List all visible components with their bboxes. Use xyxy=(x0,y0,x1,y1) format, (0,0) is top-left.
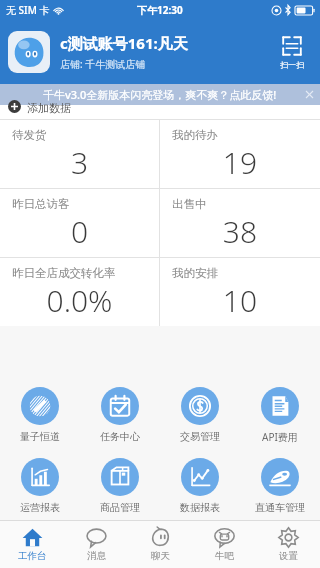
staticText: 3 xyxy=(12,142,147,182)
staticText: 19 xyxy=(172,142,308,182)
staticText: 扫一扫 xyxy=(280,60,304,70)
button[interactable]: 量子恒道 xyxy=(0,383,80,447)
button[interactable]: 交易管理 xyxy=(160,383,240,447)
staticText: 添加数据 xyxy=(27,101,71,115)
button[interactable]: 出售中 xyxy=(160,189,320,257)
button[interactable]: 添加数据 xyxy=(0,105,320,119)
staticText: 消息 xyxy=(87,550,106,562)
staticText: 店铺: 千牛测试店铺 xyxy=(60,57,146,71)
staticText: 数据报表 xyxy=(180,501,220,514)
button[interactable]: 数据报表 xyxy=(160,454,240,518)
staticText: 我的安排 xyxy=(172,266,218,280)
button[interactable]: 扫一扫 xyxy=(272,20,312,84)
button[interactable]: API费用 xyxy=(240,383,320,448)
staticText: 我的待办 xyxy=(172,128,218,142)
button[interactable]: 我的安排 xyxy=(160,258,320,326)
staticText: 0 xyxy=(12,211,147,251)
button[interactable]: 任务中心 xyxy=(80,383,160,447)
staticText: 设置 xyxy=(279,550,298,562)
button[interactable]: 关闭 xyxy=(298,84,320,105)
button[interactable]: 牛吧 xyxy=(192,521,256,568)
staticText: 任务中心 xyxy=(100,430,140,443)
button[interactable]: 运营报表 xyxy=(0,454,80,518)
button[interactable]: 直通车管理 xyxy=(240,454,320,518)
staticText: 0.0% xyxy=(12,280,147,320)
staticText: 无 SIM 卡 xyxy=(6,3,50,17)
staticText: 出售中 xyxy=(172,197,207,211)
button[interactable]: 昨日总访客 xyxy=(0,189,159,257)
staticText: 昨日全店成交转化率 xyxy=(12,266,116,280)
button[interactable]: 我的待办 xyxy=(160,120,320,188)
button[interactable]: 工作台 xyxy=(0,521,64,568)
staticText: 10 xyxy=(172,280,308,320)
button[interactable]: 商品管理 xyxy=(80,454,160,518)
button[interactable]: 千牛v3.0全新版本闪亮登场，爽不爽？点此反馈! xyxy=(0,84,320,105)
button[interactable]: 待发货 xyxy=(0,120,159,188)
staticText: 交易管理 xyxy=(180,430,220,443)
staticText: 待发货 xyxy=(12,128,47,142)
button[interactable]: 设置 xyxy=(256,521,320,568)
button[interactable] xyxy=(8,31,50,73)
button[interactable]: 消息 xyxy=(64,521,128,568)
staticText: API费用 xyxy=(262,430,298,444)
staticText: 千牛v3.0全新版本闪亮登场，爽不爽？点此反馈! xyxy=(43,87,277,102)
staticText: 下午12:30 xyxy=(137,3,183,17)
staticText: 38 xyxy=(172,211,308,251)
staticText: c测试账号161:凡天 xyxy=(60,33,188,53)
staticText: 昨日总访客 xyxy=(12,197,70,211)
staticText: 工作台 xyxy=(18,550,47,562)
staticText: 量子恒道 xyxy=(20,430,60,443)
button[interactable]: 聊天 xyxy=(128,521,192,568)
staticText: 运营报表 xyxy=(20,501,60,514)
staticText: 直通车管理 xyxy=(255,501,305,514)
staticText: 商品管理 xyxy=(100,501,140,514)
staticText: 牛吧 xyxy=(215,550,234,562)
staticText: 聊天 xyxy=(151,550,170,562)
button[interactable]: 昨日全店成交转化率 xyxy=(0,258,159,326)
